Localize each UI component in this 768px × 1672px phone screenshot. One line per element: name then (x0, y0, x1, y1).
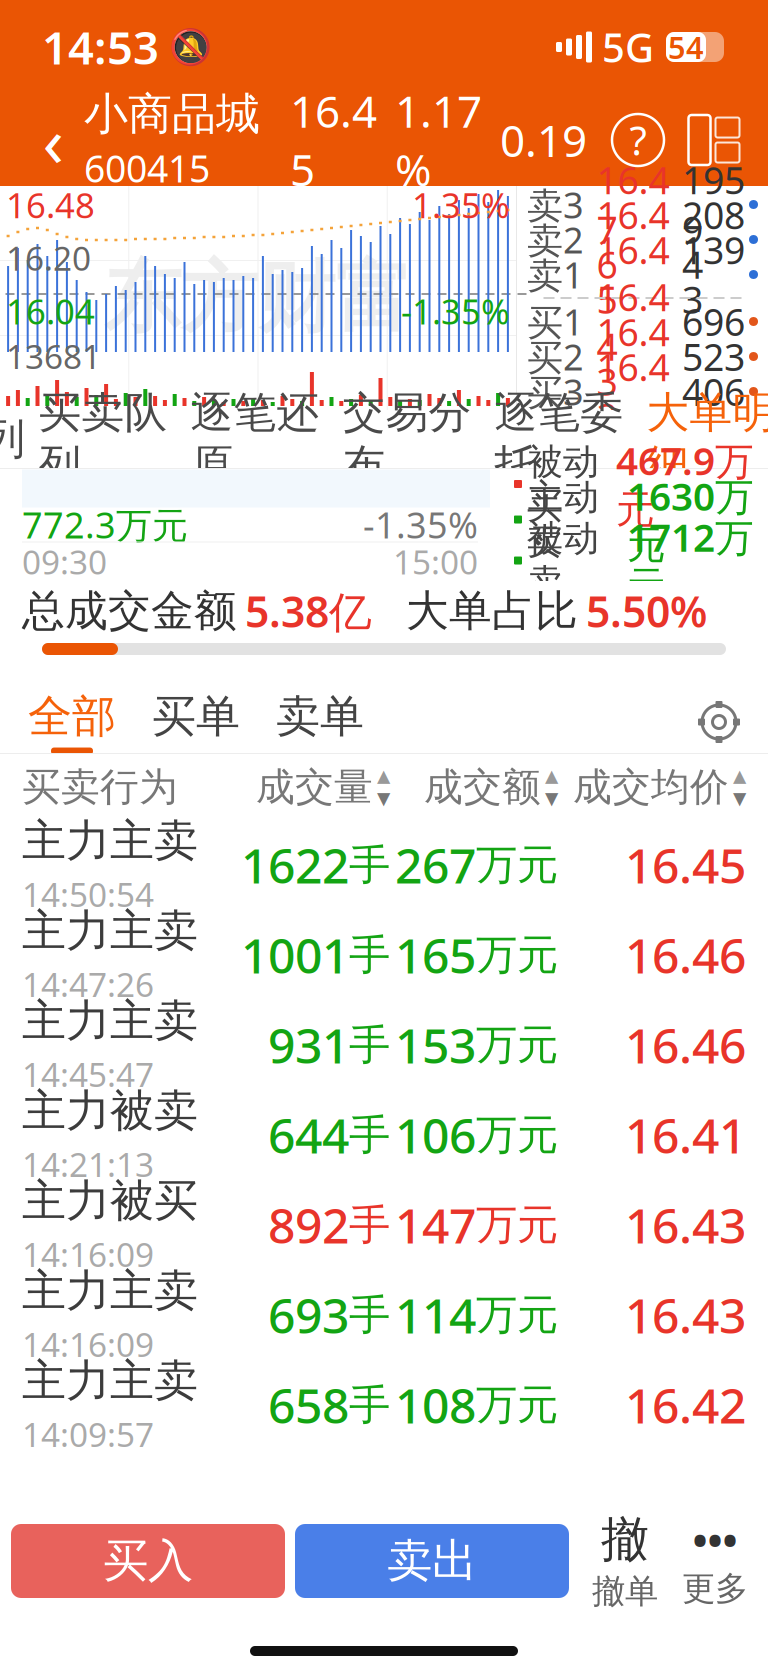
staticText: ▲ (377, 766, 390, 785)
staticText: 16.20 (6, 236, 91, 280)
staticText: 卖3 (527, 181, 584, 228)
button[interactable]: 主力主卖 (0, 820, 768, 910)
staticText: 手 (349, 1200, 390, 1250)
staticText: 1.35% (412, 182, 510, 228)
staticText: 买卖队列 (38, 387, 167, 491)
staticText: 15:00 (393, 539, 478, 584)
staticText: 卖1 (527, 251, 584, 298)
staticText: 16.43 (625, 1283, 746, 1347)
staticText: 16.42 (596, 342, 669, 441)
staticText: 1712万元 (627, 511, 754, 610)
button[interactable]: 列 (0, 410, 27, 468)
button[interactable]: Settings (692, 695, 746, 749)
staticText: 467.9万元 (616, 435, 754, 533)
button[interactable]: 卖出 (295, 1524, 569, 1598)
staticText: 1630万元 (627, 470, 754, 569)
staticText: 万元 (476, 1020, 558, 1070)
button[interactable]: 主力被卖 (0, 1090, 768, 1180)
staticText: 16.45 (625, 833, 746, 897)
staticText: 主力主卖 (22, 994, 198, 1048)
button[interactable]: 买单 (146, 691, 270, 753)
button[interactable]: 逐笔委托 (483, 410, 635, 468)
staticText: 406 (682, 367, 745, 416)
button[interactable]: 成交量 (222, 754, 390, 820)
staticText: 成交额 (424, 763, 541, 811)
staticText: 658 (268, 1373, 349, 1437)
staticText: 撤 (601, 1510, 649, 1569)
button[interactable]: 成交额 (390, 754, 558, 820)
staticText: 1959 (682, 155, 745, 254)
staticText: ▼ (377, 788, 390, 808)
staticText: 逐笔还原 (190, 387, 319, 491)
button[interactable]: 成交均价 (558, 754, 746, 820)
staticText: 被动卖 (527, 516, 599, 605)
staticText: 交易分布 (342, 387, 471, 491)
button[interactable]: 买入 (11, 1524, 285, 1598)
staticText: 16.45 (596, 225, 669, 324)
staticText: 1622 (241, 833, 349, 897)
staticText: 总成交金额 (22, 585, 237, 637)
staticText: ••• (692, 1513, 737, 1566)
staticText: 2084 (682, 190, 745, 289)
button[interactable]: 交易分布 (331, 410, 483, 468)
staticText: 16.43 (625, 1193, 746, 1257)
button[interactable]: 主力主卖 (0, 1000, 768, 1090)
button[interactable]: 主力主卖 (0, 1270, 768, 1360)
staticText: 0.19 (500, 111, 587, 169)
staticText: 16.47 (596, 155, 669, 254)
button[interactable]: 买卖队列 (27, 410, 179, 468)
staticText: 卖单 (276, 689, 364, 743)
staticText: 165 (395, 923, 476, 987)
staticText: 买3 (527, 368, 584, 415)
staticText: 🔕 (169, 27, 212, 67)
staticText: 16.04 (6, 288, 95, 334)
staticText: 撤单 (592, 1571, 658, 1612)
button[interactable]: 卖单 (270, 691, 394, 753)
staticText: 全部 (28, 689, 116, 743)
staticText: -1.35% (401, 288, 510, 334)
staticText: 147 (395, 1193, 476, 1257)
staticText: 1393 (682, 225, 745, 324)
staticText: 14:50:54 (22, 872, 154, 916)
staticText: 万元 (476, 1110, 558, 1160)
staticText: 09:30 (22, 539, 107, 584)
button[interactable]: 大单明细 (635, 410, 768, 468)
button[interactable]: 全部 (22, 691, 146, 753)
staticText: ▼ (733, 788, 746, 808)
staticText: 更多 (682, 1568, 748, 1609)
staticText: ▲ (545, 766, 558, 785)
button[interactable]: Back (26, 105, 80, 175)
staticText: 16.42 (625, 1373, 746, 1437)
staticText: 16.45 (290, 82, 377, 198)
staticText: 16.41 (625, 1103, 746, 1167)
staticText: 被动买 (527, 440, 599, 528)
staticText: 手 (349, 1020, 390, 1070)
staticText: 主力被卖 (22, 1084, 198, 1138)
staticText: 卖2 (527, 216, 584, 263)
staticText: 5.50% (586, 583, 707, 639)
staticText: 5G (602, 20, 654, 73)
staticText: 13681 (6, 334, 101, 378)
button[interactable]: 主力被买 (0, 1180, 768, 1270)
button[interactable]: Share (686, 112, 742, 168)
staticText: 931 (268, 1013, 349, 1077)
staticText: ‹ (42, 94, 63, 186)
staticText: 1001 (241, 923, 349, 987)
button[interactable]: Help (612, 114, 664, 166)
button[interactable]: 撤 (583, 1518, 667, 1604)
staticText: 买入 (103, 1533, 193, 1589)
button[interactable]: 逐笔还原 (179, 410, 331, 468)
staticText: 14:45:47 (22, 1052, 154, 1096)
staticText: 16.44 (596, 272, 669, 371)
staticText: 5.38亿 (245, 583, 372, 639)
staticText: 万元 (476, 1290, 558, 1340)
button[interactable]: 主力主卖 (0, 1360, 768, 1450)
staticText: 手 (349, 1290, 390, 1340)
button[interactable]: 主力主卖 (0, 910, 768, 1000)
staticText: 14:16:09 (22, 1322, 154, 1366)
staticText: 主力主卖 (22, 1264, 198, 1318)
staticText: 逐笔委托 (494, 387, 623, 491)
staticText: 买卖行为 (22, 763, 178, 811)
button[interactable]: ••• (673, 1518, 757, 1604)
staticText: 106 (395, 1103, 476, 1167)
